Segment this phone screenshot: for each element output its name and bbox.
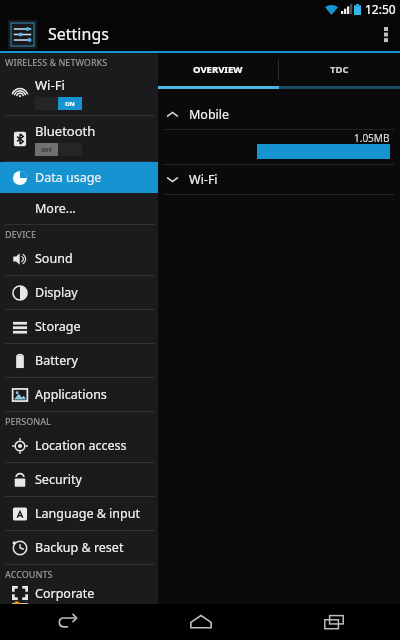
- button[interactable]: Home: [134, 604, 267, 640]
- staticText: WIRELESS & NETWORKS: [5, 56, 108, 68]
- button[interactable]: Wi-Fi: [158, 165, 400, 194]
- button[interactable]: Back: [0, 604, 134, 640]
- staticText: TDC: [330, 63, 349, 76]
- staticText: More...: [35, 200, 76, 217]
- button[interactable]: Location access: [0, 429, 158, 462]
- staticText: ON: [65, 100, 75, 108]
- other: Settings app icon: [8, 20, 37, 49]
- staticText: Applications: [35, 386, 107, 403]
- button[interactable]: Corporate: [0, 582, 158, 604]
- button[interactable]: TDC: [279, 53, 400, 86]
- button[interactable]: Data usage: [0, 162, 158, 193]
- staticText: Language & input: [35, 505, 140, 522]
- button[interactable]: Display: [0, 276, 158, 309]
- staticText: Backup & reset: [35, 539, 124, 556]
- button[interactable]: Mobile: [158, 100, 400, 129]
- staticText: 12:50: [365, 1, 396, 17]
- button[interactable]: Language & input: [0, 497, 158, 530]
- staticText: OVERVIEW: [193, 63, 243, 76]
- button[interactable]: Storage: [0, 310, 158, 343]
- staticText: Data usage: [35, 169, 102, 186]
- staticText: Wi-Fi: [35, 76, 65, 94]
- staticText: Sound: [35, 250, 73, 267]
- button[interactable]: Battery: [0, 344, 158, 377]
- staticText: Mobile: [189, 106, 230, 123]
- button[interactable]: Security: [0, 463, 158, 496]
- staticText: Display: [35, 284, 78, 301]
- staticText: PERSONAL: [5, 415, 51, 427]
- button[interactable]: More options: [372, 17, 400, 51]
- staticText: Bluetooth: [35, 122, 96, 140]
- button[interactable]: Sound: [0, 242, 158, 275]
- staticText: ACCOUNTS: [5, 568, 53, 580]
- button[interactable]: More...: [0, 193, 158, 224]
- staticText: Location access: [35, 437, 127, 454]
- staticText: Settings: [48, 23, 109, 45]
- button[interactable]: Applications: [0, 378, 158, 411]
- button[interactable]: OFF: [35, 143, 82, 156]
- button[interactable]: OVERVIEW: [158, 53, 278, 86]
- button[interactable]: Recent apps: [267, 604, 400, 640]
- button[interactable]: Bluetooth: [0, 116, 158, 161]
- staticText: OFF: [41, 146, 53, 154]
- staticText: Storage: [35, 318, 81, 335]
- staticText: Battery: [35, 352, 78, 369]
- button[interactable]: ON: [35, 97, 82, 110]
- staticText: Wi-Fi: [189, 171, 218, 188]
- staticText: Corporate: [35, 585, 95, 602]
- button[interactable]: Backup & reset: [0, 531, 158, 564]
- button[interactable]: Wi-Fi: [0, 70, 158, 115]
- staticText: 1.05MB: [354, 131, 390, 145]
- staticText: DEVICE: [5, 228, 37, 240]
- staticText: Security: [35, 471, 82, 488]
